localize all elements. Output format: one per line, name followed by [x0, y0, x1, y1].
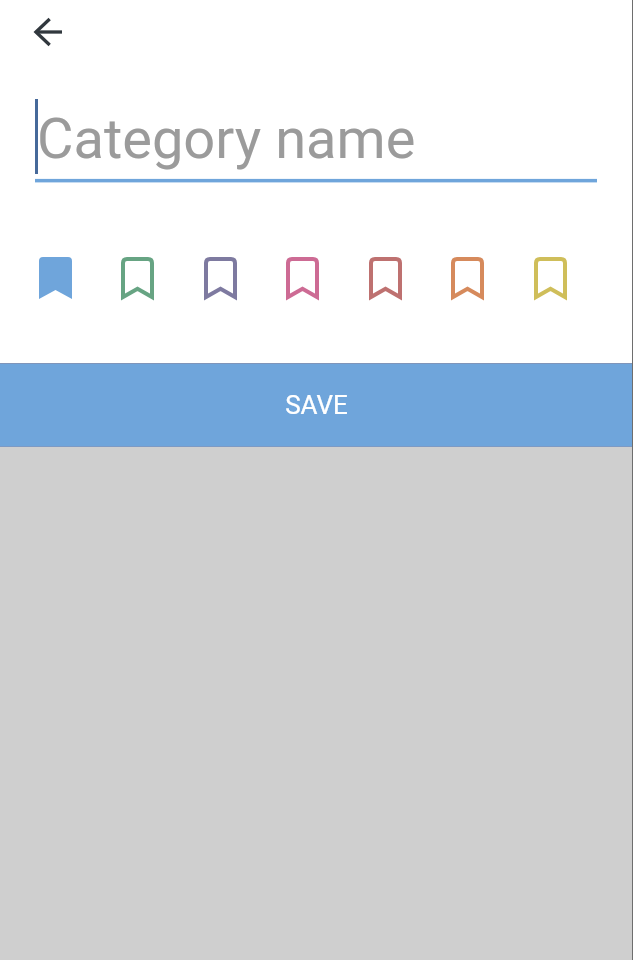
button[interactable]: Pink	[261, 232, 344, 324]
button[interactable]: Orange	[426, 232, 509, 324]
button[interactable]: Yellow	[509, 232, 592, 324]
button[interactable]: Blue	[14, 232, 97, 324]
button[interactable]: Purple	[179, 232, 262, 324]
button[interactable]: Back	[19, 3, 76, 60]
button[interactable]: Green	[96, 232, 179, 324]
staticText: Category name	[37, 106, 416, 172]
button[interactable]: Category name	[35, 98, 597, 182]
button[interactable]: SAVE	[0, 363, 633, 447]
staticText: SAVE	[285, 390, 348, 420]
button[interactable]: Red	[344, 232, 427, 324]
